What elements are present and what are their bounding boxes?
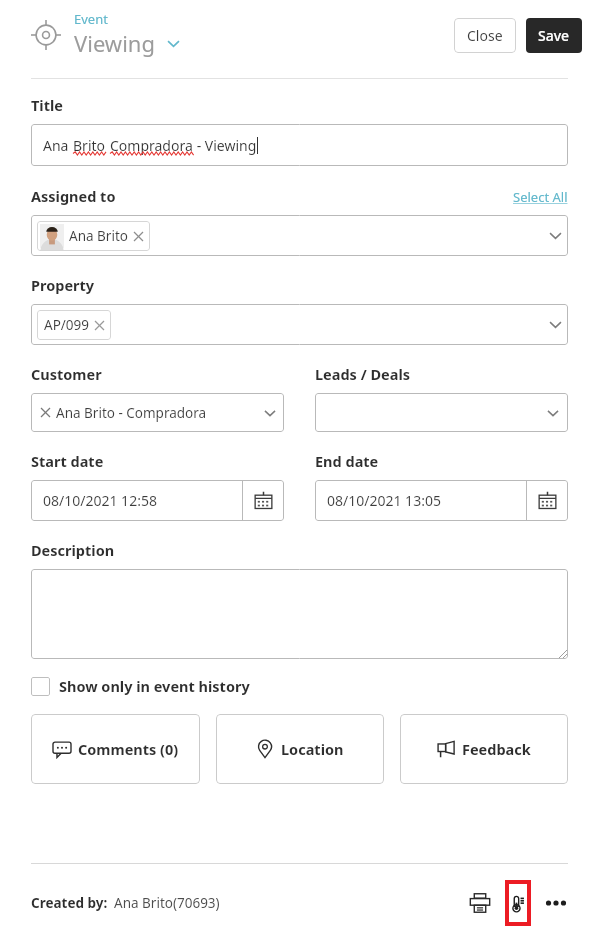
staticText: End date xyxy=(315,451,379,471)
staticText: - Viewing xyxy=(193,136,257,155)
staticText: AP/099 xyxy=(44,316,89,334)
staticText: Comments (0) xyxy=(78,739,179,759)
staticText: Viewing xyxy=(74,28,155,58)
staticText: Created by: xyxy=(31,894,108,912)
staticText: Ana Brito - Compradora xyxy=(56,404,207,422)
staticText: Select All xyxy=(513,188,568,206)
staticText: Show only in event history xyxy=(59,676,250,696)
staticText: 08/10/2021 12:58 xyxy=(43,491,157,510)
button[interactable]: Temperature xyxy=(509,884,527,922)
staticText: Assigned to xyxy=(31,186,116,206)
button[interactable]: Event type xyxy=(26,15,66,55)
staticText: 08/10/2021 13:05 xyxy=(327,491,441,510)
staticText: Description xyxy=(31,540,115,560)
button[interactable]: Ana Brito - Compradora xyxy=(31,393,284,432)
button[interactable]: Close xyxy=(454,18,516,53)
staticText: Property xyxy=(31,275,95,295)
button[interactable]: Change event type xyxy=(164,34,182,52)
button[interactable]: 08/10/2021 12:58 xyxy=(31,480,284,521)
button[interactable]: 08/10/2021 13:05 xyxy=(315,480,568,521)
other: Pick date xyxy=(243,480,284,521)
staticText: Event xyxy=(74,10,108,28)
staticText: Ana xyxy=(43,136,73,155)
button[interactable]: More options xyxy=(540,887,572,919)
button[interactable]: Comments (0) xyxy=(31,714,200,784)
button[interactable] xyxy=(315,393,568,432)
staticText: Compradora xyxy=(110,136,193,155)
button[interactable]: AP/099 xyxy=(31,304,568,345)
button[interactable]: Ana Brito xyxy=(31,215,568,256)
staticText xyxy=(106,136,110,155)
button[interactable]: Location xyxy=(216,714,384,784)
staticText: Title xyxy=(31,95,63,115)
button[interactable]: Feedback xyxy=(400,714,568,784)
button[interactable]: Show only in event history xyxy=(31,676,250,696)
button[interactable]: Print xyxy=(463,886,497,920)
button[interactable]: Save xyxy=(526,18,582,53)
staticText: Ana Brito xyxy=(69,227,128,245)
button[interactable]: Ana xyxy=(31,124,568,166)
staticText: Close xyxy=(467,26,503,45)
other: Pick date xyxy=(527,480,568,521)
staticText: Location xyxy=(281,739,344,759)
button[interactable] xyxy=(31,569,568,659)
button[interactable]: Ana Brito xyxy=(40,221,143,251)
button[interactable]: AP/099 xyxy=(44,310,104,340)
staticText: Customer xyxy=(31,364,102,384)
staticText: Brito xyxy=(73,136,106,155)
staticText: Ana Brito(70693) xyxy=(114,894,220,912)
staticText: Save xyxy=(538,26,570,45)
staticText: Leads / Deals xyxy=(315,364,411,384)
button[interactable]: Select All xyxy=(513,188,568,206)
staticText: Start date xyxy=(31,451,104,471)
staticText: Feedback xyxy=(462,739,531,759)
